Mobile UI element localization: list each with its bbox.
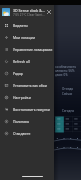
staticText: Восстановить покупки: [13, 107, 50, 112]
button[interactable]: Радар: [0, 67, 54, 79]
staticText: Радар: [13, 71, 23, 76]
button[interactable]: Виджеты: [0, 19, 54, 31]
staticText: 7:55 21°C Clear Saint Petersbu: [13, 13, 45, 17]
button[interactable]: Восстановить покупки: [0, 103, 54, 115]
button[interactable]: Управление локациями: [0, 43, 54, 55]
staticText: Отсюда: [62, 87, 73, 91]
staticText: Виджеты: [13, 23, 28, 28]
staticText: Refresh all: [13, 59, 30, 64]
staticText: Мои локации: [13, 35, 35, 40]
staticText: Установить как обои: [13, 83, 47, 88]
staticText: ая облачность: [55, 65, 77, 69]
staticText: 3D Sense clock & weather: [13, 8, 45, 13]
button[interactable]: Мои локации: [0, 31, 54, 43]
button[interactable]: Refresh all: [0, 55, 54, 67]
button[interactable]: О виджете: [0, 127, 54, 139]
button[interactable]: Установить как обои: [0, 79, 54, 91]
staticText: Политика: [13, 119, 29, 124]
staticText: дков: 0%: [55, 73, 68, 77]
staticText: Управление локациями: [13, 47, 53, 52]
button[interactable]: Настройки: [0, 91, 54, 103]
staticText: Настройки: [13, 95, 31, 100]
staticText: Сегодня: [62, 109, 75, 113]
staticText: ажность: 56%: [55, 69, 75, 73]
button[interactable]: Close: [45, 8, 53, 16]
button[interactable]: Политика: [0, 115, 54, 127]
button[interactable]: 3D Sense clock & weather: [0, 5, 54, 19]
staticText: О виджете: [13, 131, 31, 136]
staticText: Сейчас: [62, 92, 73, 96]
